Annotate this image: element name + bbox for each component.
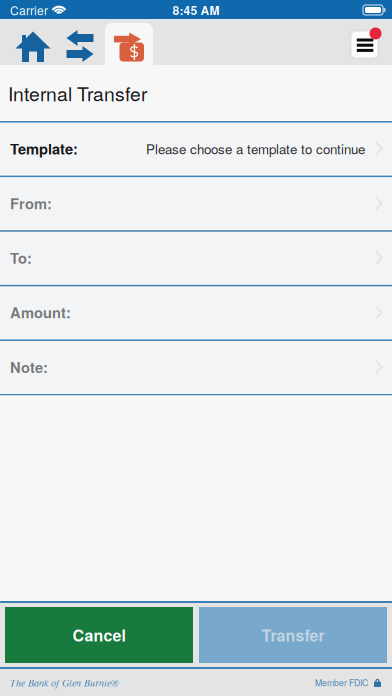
staticText: Cancel — [72, 623, 125, 646]
staticText: From: — [10, 193, 52, 214]
staticText: Internal Transfer — [8, 79, 147, 107]
staticText: Amount: — [10, 302, 71, 323]
staticText: Note: — [10, 356, 48, 377]
staticText: Template: — [10, 138, 78, 159]
staticText: 8:45 AM — [172, 1, 219, 19]
button[interactable]: Menu — [349, 22, 382, 68]
staticText: Member FDIC — [315, 676, 368, 689]
staticText: Please choose a template to continue — [146, 139, 365, 158]
button[interactable]: Transfers — [59, 23, 101, 69]
button[interactable]: To: — [0, 229, 392, 284]
button[interactable]: Transfer — [199, 607, 387, 663]
button[interactable]: Cancel — [5, 607, 193, 663]
button[interactable]: From: — [0, 175, 392, 229]
button[interactable]: Template: — [0, 120, 392, 175]
staticText: To: — [10, 247, 32, 268]
staticText: Transfer — [261, 623, 324, 646]
button[interactable]: Internal Transfer — [105, 24, 153, 70]
button[interactable]: Amount: — [0, 284, 392, 338]
button[interactable]: Home — [11, 24, 55, 70]
staticText: The Bank of Glen Burnie® — [10, 676, 119, 689]
staticText: Carrier — [10, 1, 48, 19]
button[interactable]: Note: — [0, 338, 392, 393]
